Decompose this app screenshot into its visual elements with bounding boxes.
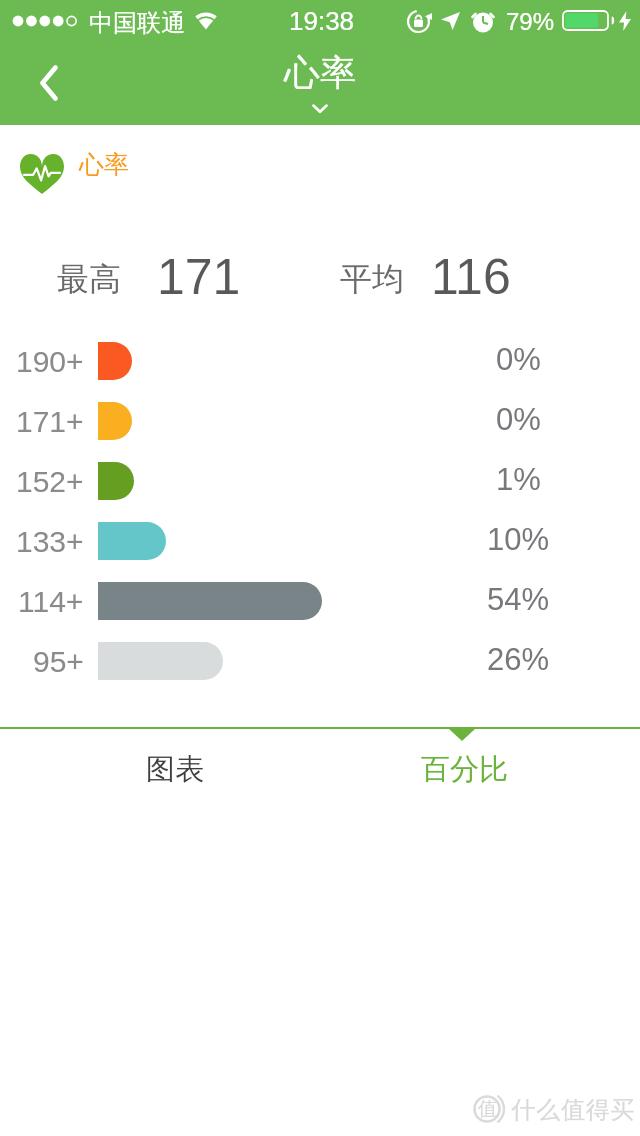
button[interactable] xyxy=(312,104,328,114)
staticText: 平均 xyxy=(340,259,404,299)
button[interactable]: 百分比 xyxy=(384,747,544,791)
staticText: 心率 xyxy=(284,50,356,95)
staticText: 中国联通 xyxy=(89,8,185,38)
staticText: 54% xyxy=(487,582,550,617)
staticText: 10% xyxy=(487,522,550,557)
button[interactable]: 图表 xyxy=(95,747,255,791)
staticText: 值 xyxy=(478,1097,497,1121)
staticText: 79% xyxy=(506,8,555,35)
staticText: 什么值得买 xyxy=(511,1095,635,1125)
staticText: 0% xyxy=(496,342,541,377)
button[interactable]: 心率 xyxy=(79,149,129,180)
staticText: 114+ xyxy=(18,585,84,619)
staticText: 152+ xyxy=(16,465,84,499)
staticText: 0% xyxy=(496,402,541,437)
staticText: 133+ xyxy=(16,525,84,559)
staticText: 百分比 xyxy=(421,751,508,788)
staticText: 26% xyxy=(487,642,550,677)
staticText: 171 xyxy=(157,249,241,305)
staticText: 95+ xyxy=(33,645,84,679)
button[interactable] xyxy=(18,58,78,114)
staticText: 190+ xyxy=(16,345,84,379)
staticText: 19:38 xyxy=(289,6,355,35)
staticText: 171+ xyxy=(16,405,84,439)
staticText: 心率 xyxy=(79,149,129,180)
staticText: 1% xyxy=(496,462,541,497)
staticText: 116 xyxy=(431,249,511,305)
staticText: 图表 xyxy=(146,751,204,788)
staticText: 最高 xyxy=(57,259,121,299)
